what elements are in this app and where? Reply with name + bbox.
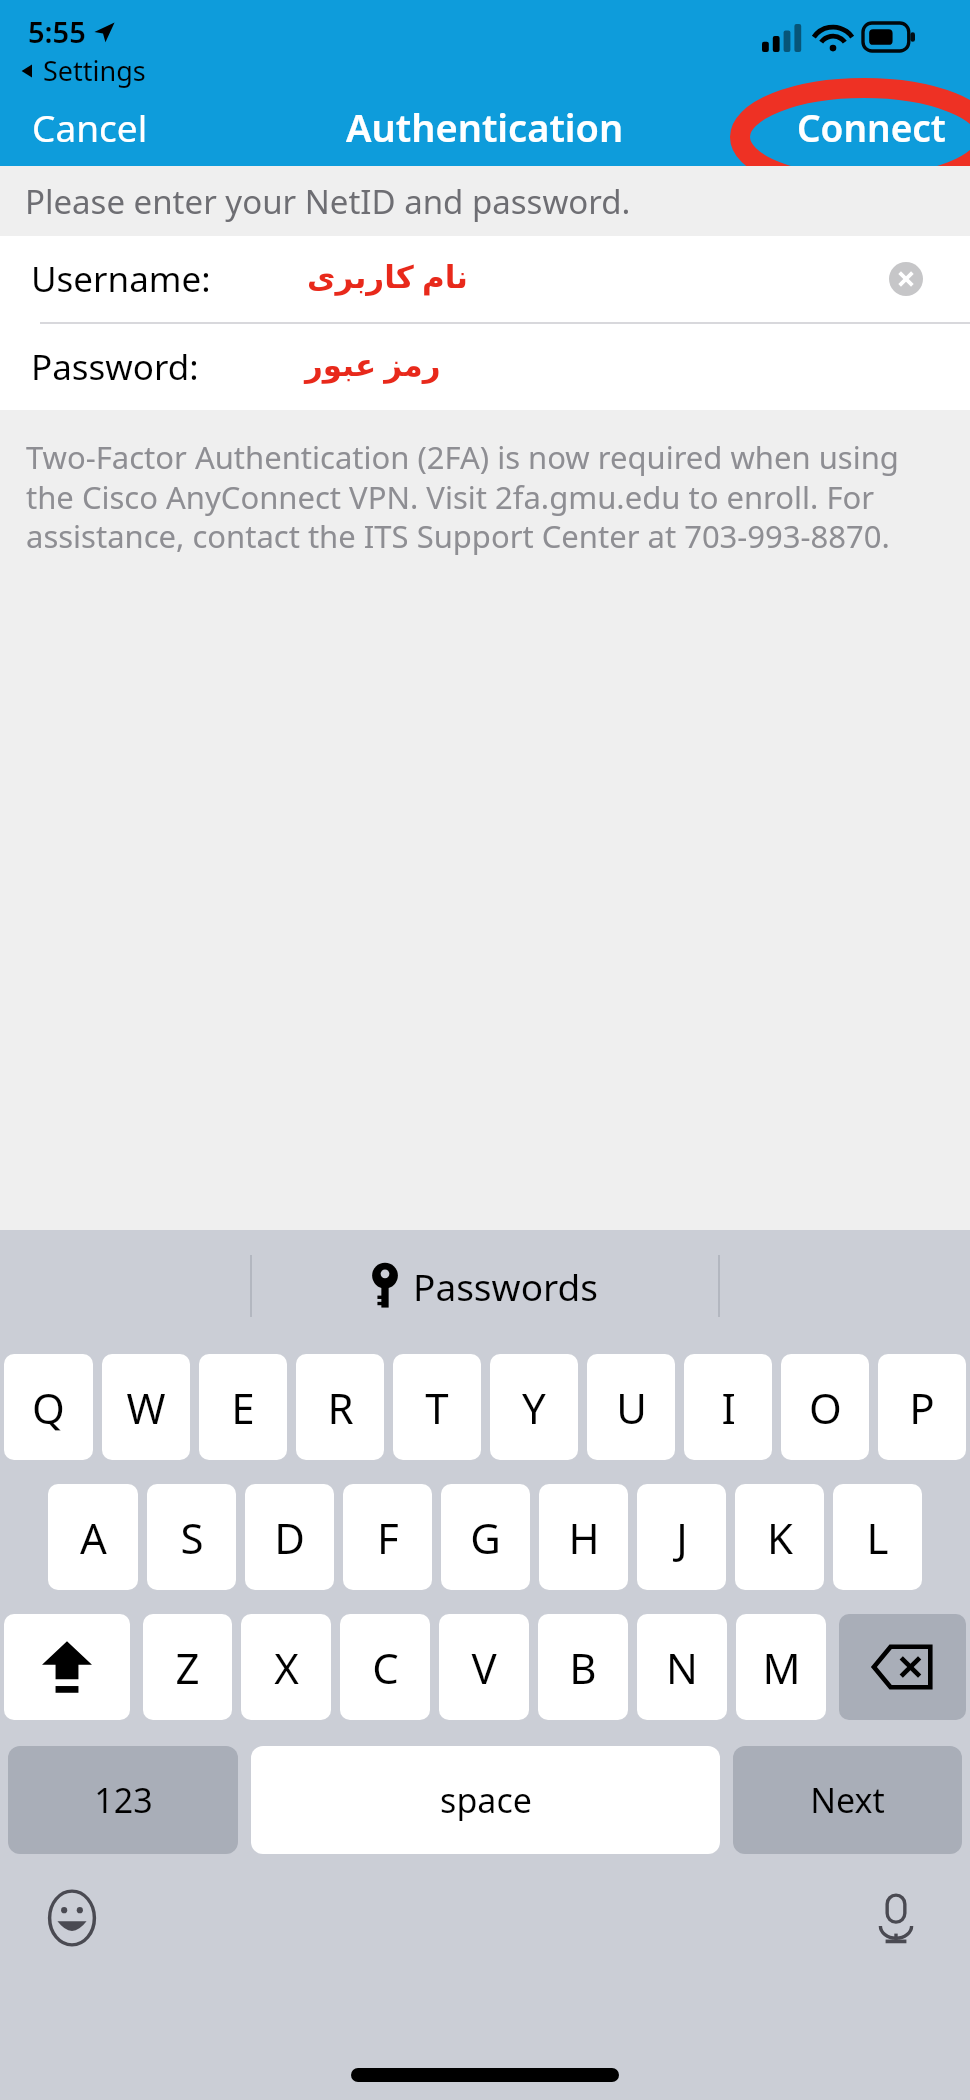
button[interactable]: I bbox=[684, 1354, 772, 1460]
button[interactable]: Shift bbox=[4, 1614, 130, 1720]
button[interactable]: Emoji keyboard bbox=[36, 1882, 108, 1954]
button[interactable]: Y bbox=[490, 1354, 578, 1460]
staticText: I bbox=[721, 1379, 736, 1436]
button[interactable]: Password: bbox=[0, 324, 970, 410]
staticText: L bbox=[866, 1509, 889, 1566]
staticText: U bbox=[616, 1379, 647, 1436]
staticText: A bbox=[80, 1509, 107, 1566]
button[interactable]: Backspace bbox=[839, 1614, 966, 1720]
staticText: E bbox=[231, 1379, 255, 1436]
button[interactable]: Q bbox=[4, 1354, 93, 1460]
staticText: 123 bbox=[94, 1777, 153, 1823]
staticText: B bbox=[569, 1639, 597, 1696]
button[interactable]: O bbox=[781, 1354, 869, 1460]
staticText: Q bbox=[32, 1379, 65, 1436]
button[interactable]: space bbox=[251, 1746, 720, 1854]
button[interactable]: V bbox=[439, 1614, 529, 1720]
button[interactable]: Cancel bbox=[18, 92, 162, 162]
button[interactable]: Connect bbox=[779, 90, 964, 164]
button[interactable]: U bbox=[587, 1354, 675, 1460]
staticText: Cancel bbox=[32, 102, 148, 152]
staticText: W bbox=[126, 1379, 166, 1436]
button[interactable]: L bbox=[833, 1484, 922, 1590]
button[interactable]: C bbox=[340, 1614, 430, 1720]
button[interactable]: 123 bbox=[8, 1746, 238, 1854]
button[interactable]: K bbox=[735, 1484, 824, 1590]
staticText: space bbox=[440, 1777, 532, 1823]
staticText: G bbox=[470, 1509, 501, 1566]
button[interactable]: P bbox=[878, 1354, 966, 1460]
button[interactable]: Clear text bbox=[884, 257, 928, 301]
staticText: R bbox=[327, 1379, 354, 1436]
button[interactable]: Settings bbox=[14, 50, 150, 91]
staticText: P bbox=[909, 1379, 935, 1436]
button[interactable]: M bbox=[736, 1614, 826, 1720]
staticText: C bbox=[372, 1639, 399, 1696]
staticText: Password: bbox=[31, 343, 199, 391]
staticText: X bbox=[274, 1639, 299, 1696]
staticText: Two-Factor Authentication (2FA) is now r… bbox=[26, 436, 944, 557]
button[interactable]: Z bbox=[143, 1614, 232, 1720]
staticText: K bbox=[767, 1509, 793, 1566]
button[interactable]: Username: bbox=[0, 236, 970, 322]
button[interactable]: R bbox=[296, 1354, 384, 1460]
button[interactable]: E bbox=[199, 1354, 287, 1460]
staticText: J bbox=[676, 1509, 688, 1566]
staticText: N bbox=[666, 1639, 698, 1696]
staticText: F bbox=[377, 1509, 399, 1566]
staticText: Settings bbox=[43, 52, 146, 89]
staticText: Username: bbox=[31, 255, 211, 303]
staticText: M bbox=[762, 1639, 801, 1696]
button[interactable]: D bbox=[245, 1484, 334, 1590]
staticText: نام کاربری bbox=[307, 255, 468, 297]
staticText: رمز عبور bbox=[305, 343, 441, 385]
button[interactable]: S bbox=[147, 1484, 236, 1590]
staticText: S bbox=[180, 1509, 204, 1566]
staticText: Passwords bbox=[413, 1261, 599, 1311]
button[interactable]: J bbox=[637, 1484, 726, 1590]
staticText: Next bbox=[810, 1777, 885, 1823]
staticText: T bbox=[425, 1379, 449, 1436]
button[interactable]: N bbox=[637, 1614, 727, 1720]
button[interactable]: T bbox=[393, 1354, 481, 1460]
staticText: Z bbox=[175, 1639, 200, 1696]
staticText: H bbox=[568, 1509, 600, 1566]
staticText: Authentication bbox=[346, 101, 624, 153]
button[interactable]: F bbox=[343, 1484, 432, 1590]
staticText: O bbox=[809, 1379, 842, 1436]
staticText: Please enter your NetID and password. bbox=[25, 179, 631, 224]
button[interactable]: G bbox=[441, 1484, 530, 1590]
button[interactable]: A bbox=[48, 1484, 138, 1590]
button[interactable]: X bbox=[241, 1614, 331, 1720]
button[interactable]: Passwords bbox=[355, 1253, 615, 1319]
button[interactable]: Next bbox=[733, 1746, 962, 1854]
staticText: D bbox=[274, 1509, 305, 1566]
staticText: V bbox=[471, 1639, 497, 1696]
staticText: Connect bbox=[797, 102, 946, 152]
button[interactable]: H bbox=[539, 1484, 628, 1590]
button[interactable]: Dictation bbox=[860, 1882, 932, 1954]
staticText: Y bbox=[522, 1379, 546, 1436]
button[interactable]: W bbox=[102, 1354, 190, 1460]
button[interactable]: B bbox=[538, 1614, 628, 1720]
staticText: 5:55 bbox=[28, 12, 86, 51]
